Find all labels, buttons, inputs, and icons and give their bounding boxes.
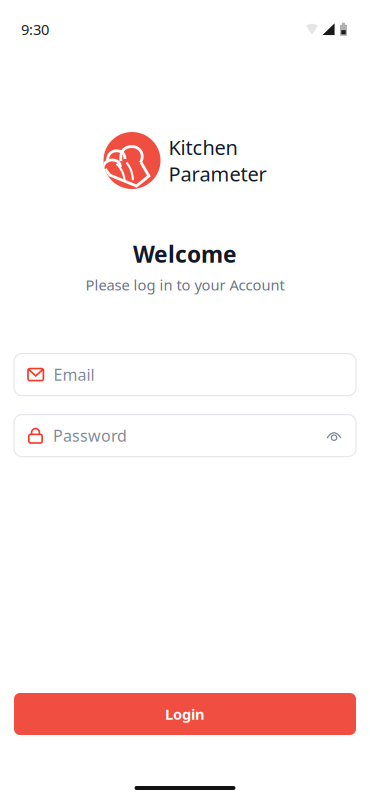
staticText: 9:30: [21, 19, 49, 39]
staticText: Password: [53, 425, 127, 446]
button[interactable]: Email: [14, 354, 356, 396]
button[interactable]: Password: [14, 415, 356, 457]
staticText: Kitchen Parameter: [168, 134, 266, 187]
staticText: Email: [53, 364, 94, 385]
button[interactable]: Login: [14, 693, 356, 735]
staticText: Please log in to your Account: [85, 275, 284, 295]
staticText: Login: [165, 704, 205, 724]
staticText: Welcome: [133, 239, 237, 269]
